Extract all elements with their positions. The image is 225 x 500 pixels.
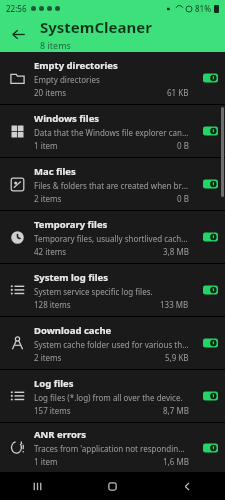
staticText: System cache folder used for various thi… xyxy=(34,339,189,350)
staticText: 81% xyxy=(195,3,211,14)
button[interactable]: Recents xyxy=(0,472,75,500)
button[interactable]: Back xyxy=(0,16,36,52)
button[interactable]: Home xyxy=(75,472,150,500)
staticText: 1,6 MB xyxy=(163,456,189,467)
button[interactable]: Log files xyxy=(0,370,225,422)
button[interactable]: Toggle ANR errors xyxy=(195,423,225,472)
staticText: Download cache xyxy=(34,324,112,337)
staticText: Mac files xyxy=(34,165,76,178)
button[interactable]: Toggle Mac files xyxy=(195,158,225,210)
button[interactable]: Mac files xyxy=(0,158,225,210)
staticText: Traces from 'application not responding'… xyxy=(34,443,189,454)
staticText: 8,7 MB xyxy=(163,405,189,416)
staticText: System service specific log files. xyxy=(34,286,153,297)
button[interactable]: Toggle Windows files xyxy=(195,105,225,157)
staticText: 128 items xyxy=(34,299,71,310)
button[interactable]: Toggle System log files xyxy=(195,264,225,316)
button[interactable]: Toggle Empty directories xyxy=(195,52,225,104)
staticText: Empty directories xyxy=(34,59,118,72)
button[interactable]: ANR errors xyxy=(0,423,225,472)
staticText: 42 items xyxy=(34,246,67,257)
staticText: 0 B xyxy=(177,140,189,151)
staticText: Files & folders that are created when br… xyxy=(34,180,189,191)
staticText: Windows files xyxy=(34,112,100,125)
staticText: Data that the Windows file explorer can … xyxy=(34,127,189,138)
button[interactable]: Download cache xyxy=(0,317,225,369)
staticText: 22:56 xyxy=(6,3,27,14)
staticText: 1 item xyxy=(34,140,58,151)
staticText: Log files xyxy=(34,377,74,390)
button[interactable]: System log files xyxy=(0,264,225,316)
staticText: 3,8 MB xyxy=(163,246,189,257)
staticText: 0 B xyxy=(177,193,189,204)
staticText: System log files xyxy=(34,271,108,284)
button[interactable]: Toggle Temporary files xyxy=(195,211,225,263)
staticText: Temporary files xyxy=(34,218,108,231)
staticText: ANR errors xyxy=(34,428,86,441)
staticText: 20 items xyxy=(34,87,67,98)
staticText: Empty directories xyxy=(34,74,100,85)
staticText: 2 items xyxy=(34,193,62,204)
staticText: 5,9 KB xyxy=(165,352,189,363)
staticText: SystemCleaner xyxy=(40,17,152,37)
button[interactable]: Toggle Download cache xyxy=(195,317,225,369)
button[interactable]: Empty directories xyxy=(0,52,225,104)
staticText: 157 items xyxy=(34,405,71,416)
staticText: 61 KB xyxy=(167,87,189,98)
button[interactable]: Toggle Log files xyxy=(195,370,225,422)
button[interactable]: Windows files xyxy=(0,105,225,157)
staticText: 2 items xyxy=(34,352,62,363)
button[interactable]: Temporary files xyxy=(0,211,225,263)
staticText: Log files (*.log) from all over the devi… xyxy=(34,392,183,403)
staticText: 8 items xyxy=(40,39,71,51)
staticText: 133 MB xyxy=(160,299,189,310)
button[interactable]: Back xyxy=(150,472,225,500)
staticText: Temporary files, usually shortlived cach… xyxy=(34,233,189,244)
staticText: 1 item xyxy=(34,456,58,467)
